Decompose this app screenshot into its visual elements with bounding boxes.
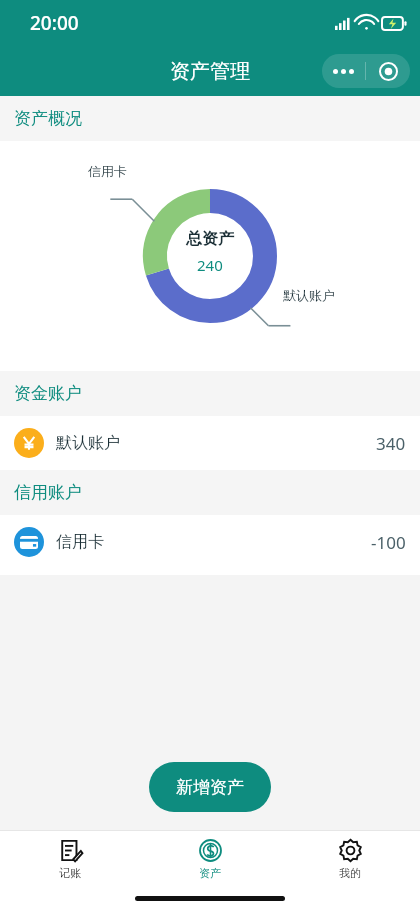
button[interactable]: 记账	[0, 831, 140, 887]
button[interactable]: 默认账户	[0, 416, 420, 470]
staticText: -100	[371, 531, 406, 554]
staticText: 默认账户	[283, 287, 335, 303]
staticText: 资产概况	[14, 108, 82, 129]
staticText: 资产管理	[170, 59, 250, 84]
staticText: 资金账户	[14, 383, 82, 404]
staticText: 记账	[59, 866, 81, 880]
staticText: 总资产	[186, 229, 234, 249]
button[interactable]: Menu	[322, 54, 410, 88]
staticText: 我的	[339, 866, 361, 880]
staticText: 资产	[199, 866, 221, 880]
staticText: 240	[197, 255, 223, 275]
staticText: 340	[376, 432, 406, 455]
staticText: 20:00	[30, 10, 79, 36]
staticText: 信用账户	[14, 482, 82, 503]
staticText: 新增资产	[176, 777, 244, 798]
button[interactable]: 信用卡	[0, 515, 420, 569]
staticText: 信用卡	[88, 163, 127, 179]
button[interactable]: 新增资产	[149, 762, 271, 812]
button[interactable]: 资产	[140, 831, 280, 887]
staticText: 默认账户	[56, 433, 120, 453]
button[interactable]: 我的	[280, 831, 420, 887]
staticText: 信用卡	[56, 532, 104, 552]
